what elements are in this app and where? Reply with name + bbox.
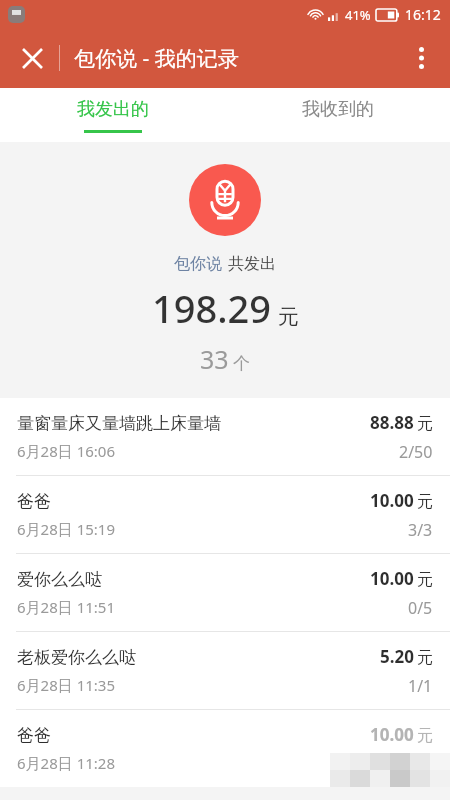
staticText: 1/1 — [408, 675, 433, 697]
staticText: 198.29 — [152, 282, 272, 334]
button[interactable]: Close — [10, 36, 54, 80]
button[interactable]: More options — [398, 35, 444, 81]
staticText: 包你说 — [174, 254, 222, 274]
staticText: 10.00 — [370, 567, 414, 590]
staticText: 6月28日 16:06 — [17, 441, 115, 461]
staticText: 包你说 - 我的记录 — [74, 44, 239, 73]
button[interactable]: 爱你么么哒 — [0, 554, 450, 631]
staticText: 6月28日 11:28 — [17, 753, 115, 773]
staticText: 爱你么么哒 — [17, 569, 102, 590]
staticText: 共发出 — [228, 254, 276, 274]
button[interactable]: 爸爸 — [0, 710, 450, 787]
staticText: 爸爸 — [17, 491, 51, 512]
staticText: 元 — [417, 726, 433, 746]
staticText: 元 — [417, 570, 433, 590]
staticText: 元 — [417, 414, 433, 434]
button[interactable]: 老板爱你么么哒 — [0, 632, 450, 709]
button[interactable]: 我发出的 — [0, 88, 225, 142]
staticText: 16:12 — [405, 5, 441, 24]
staticText: 6月28日 11:35 — [17, 675, 115, 695]
staticText: 88.88 — [370, 411, 414, 434]
staticText: 元 — [417, 648, 433, 668]
staticText: 量窗量床又量墙跳上床量墙 — [17, 413, 221, 434]
staticText: 6月28日 15:19 — [17, 519, 115, 539]
staticText: 个 — [233, 353, 250, 374]
staticText: 元 — [278, 304, 299, 330]
staticText: 爸爸 — [17, 725, 51, 746]
staticText: 3/3 — [408, 519, 433, 541]
staticText: 老板爱你么么哒 — [17, 647, 136, 668]
staticText: 5.20 — [380, 645, 414, 668]
staticText: 10.00 — [370, 723, 414, 746]
staticText: 0/5 — [408, 597, 433, 619]
button[interactable]: 我收到的 — [225, 88, 450, 142]
staticText: 元 — [417, 492, 433, 512]
staticText: 6月28日 11:51 — [17, 597, 115, 617]
staticText: 10.00 — [370, 489, 414, 512]
button[interactable]: 量窗量床又量墙跳上床量墙 — [0, 398, 450, 475]
staticText: 33 — [200, 342, 229, 376]
staticText: 41% — [345, 6, 371, 24]
staticText: 我发出的 — [77, 98, 149, 121]
staticText: 2/50 — [399, 441, 433, 463]
button[interactable]: 爸爸 — [0, 476, 450, 553]
button[interactable]: Voice record — [189, 164, 261, 236]
staticText: 我收到的 — [302, 98, 374, 121]
